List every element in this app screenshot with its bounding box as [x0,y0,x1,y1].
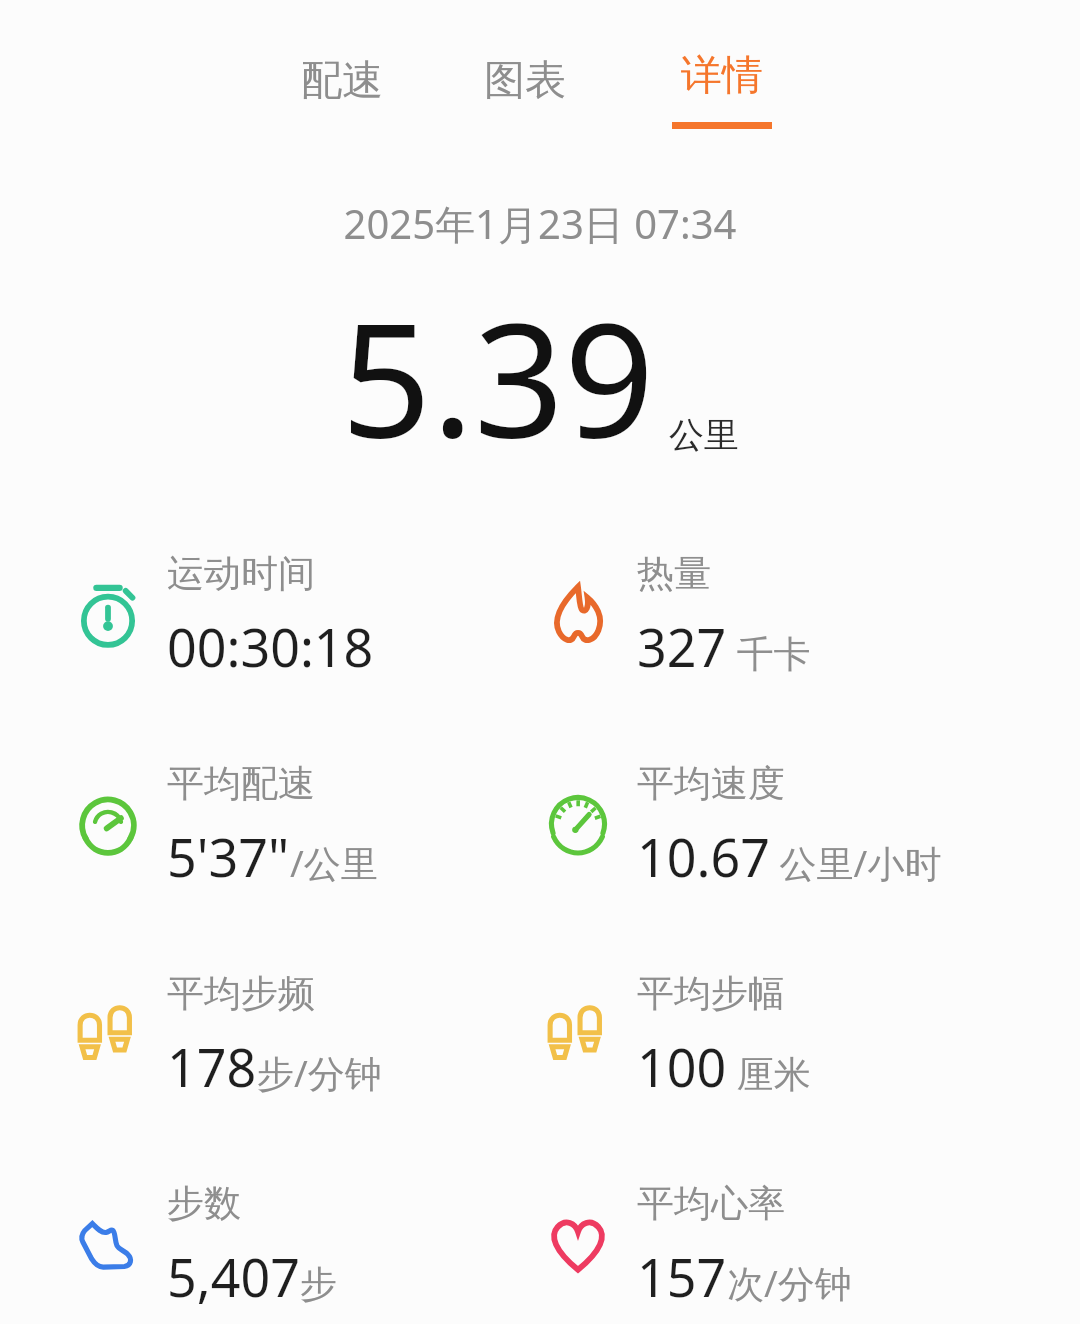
staticText: 2025年1月23日 07:34 [0,196,1080,251]
staticText: 图表 [484,55,566,107]
staticText: 178 [167,1031,257,1102]
staticText: 配速 [301,55,383,107]
other: Duration [74,580,142,648]
button[interactable]: Average heart rate [530,1180,1020,1324]
button[interactable]: Duration [60,550,550,725]
staticText: 热量 [637,550,711,597]
staticText: 运动时间 [167,550,315,597]
button[interactable]: Steps cadence [530,970,1020,1145]
staticText: 平均速度 [637,760,785,807]
staticText: 次/分钟 [727,1257,852,1308]
button[interactable]: 图表 [470,45,580,117]
other: Steps [74,1210,142,1278]
button[interactable]: Calories [530,550,1020,725]
other: Calories [544,580,612,648]
staticText: 步数 [167,1180,241,1227]
button[interactable]: 详情 [652,45,792,137]
staticText: /公里 [290,837,378,888]
button[interactable]: Steps cadence [60,970,550,1145]
staticText: 5.39 [341,268,655,483]
staticText: 157 [637,1241,727,1312]
other: Average pace [74,790,142,858]
button[interactable]: 配速 [287,45,397,117]
staticText: 公里/小时 [770,837,942,888]
button[interactable]: Average pace [60,760,550,935]
staticText: 100 [637,1031,727,1102]
staticText: 00:30:18 [167,611,374,682]
staticText: 5'37" [167,821,290,892]
staticText: 步 [300,1261,337,1308]
staticText: 5,407 [167,1241,300,1312]
staticText: 平均步幅 [637,970,785,1017]
staticText: 厘米 [727,1047,811,1098]
staticText: 平均步频 [167,970,315,1017]
staticText: 平均心率 [637,1180,785,1227]
button[interactable]: Steps [60,1180,550,1324]
staticText: 10.67 [637,821,770,892]
staticText: 平均配速 [167,760,315,807]
other: Average heart rate [544,1210,612,1278]
staticText: 公里 [669,413,739,457]
staticText: 千卡 [727,627,811,678]
staticText: 步/分钟 [257,1047,382,1098]
other: Steps cadence [74,1000,142,1068]
staticText: 详情 [681,50,763,102]
other: Average speed [544,790,612,858]
button[interactable]: Average speed [530,760,1020,935]
staticText: 327 [637,611,727,682]
other: Steps cadence [544,1000,612,1068]
